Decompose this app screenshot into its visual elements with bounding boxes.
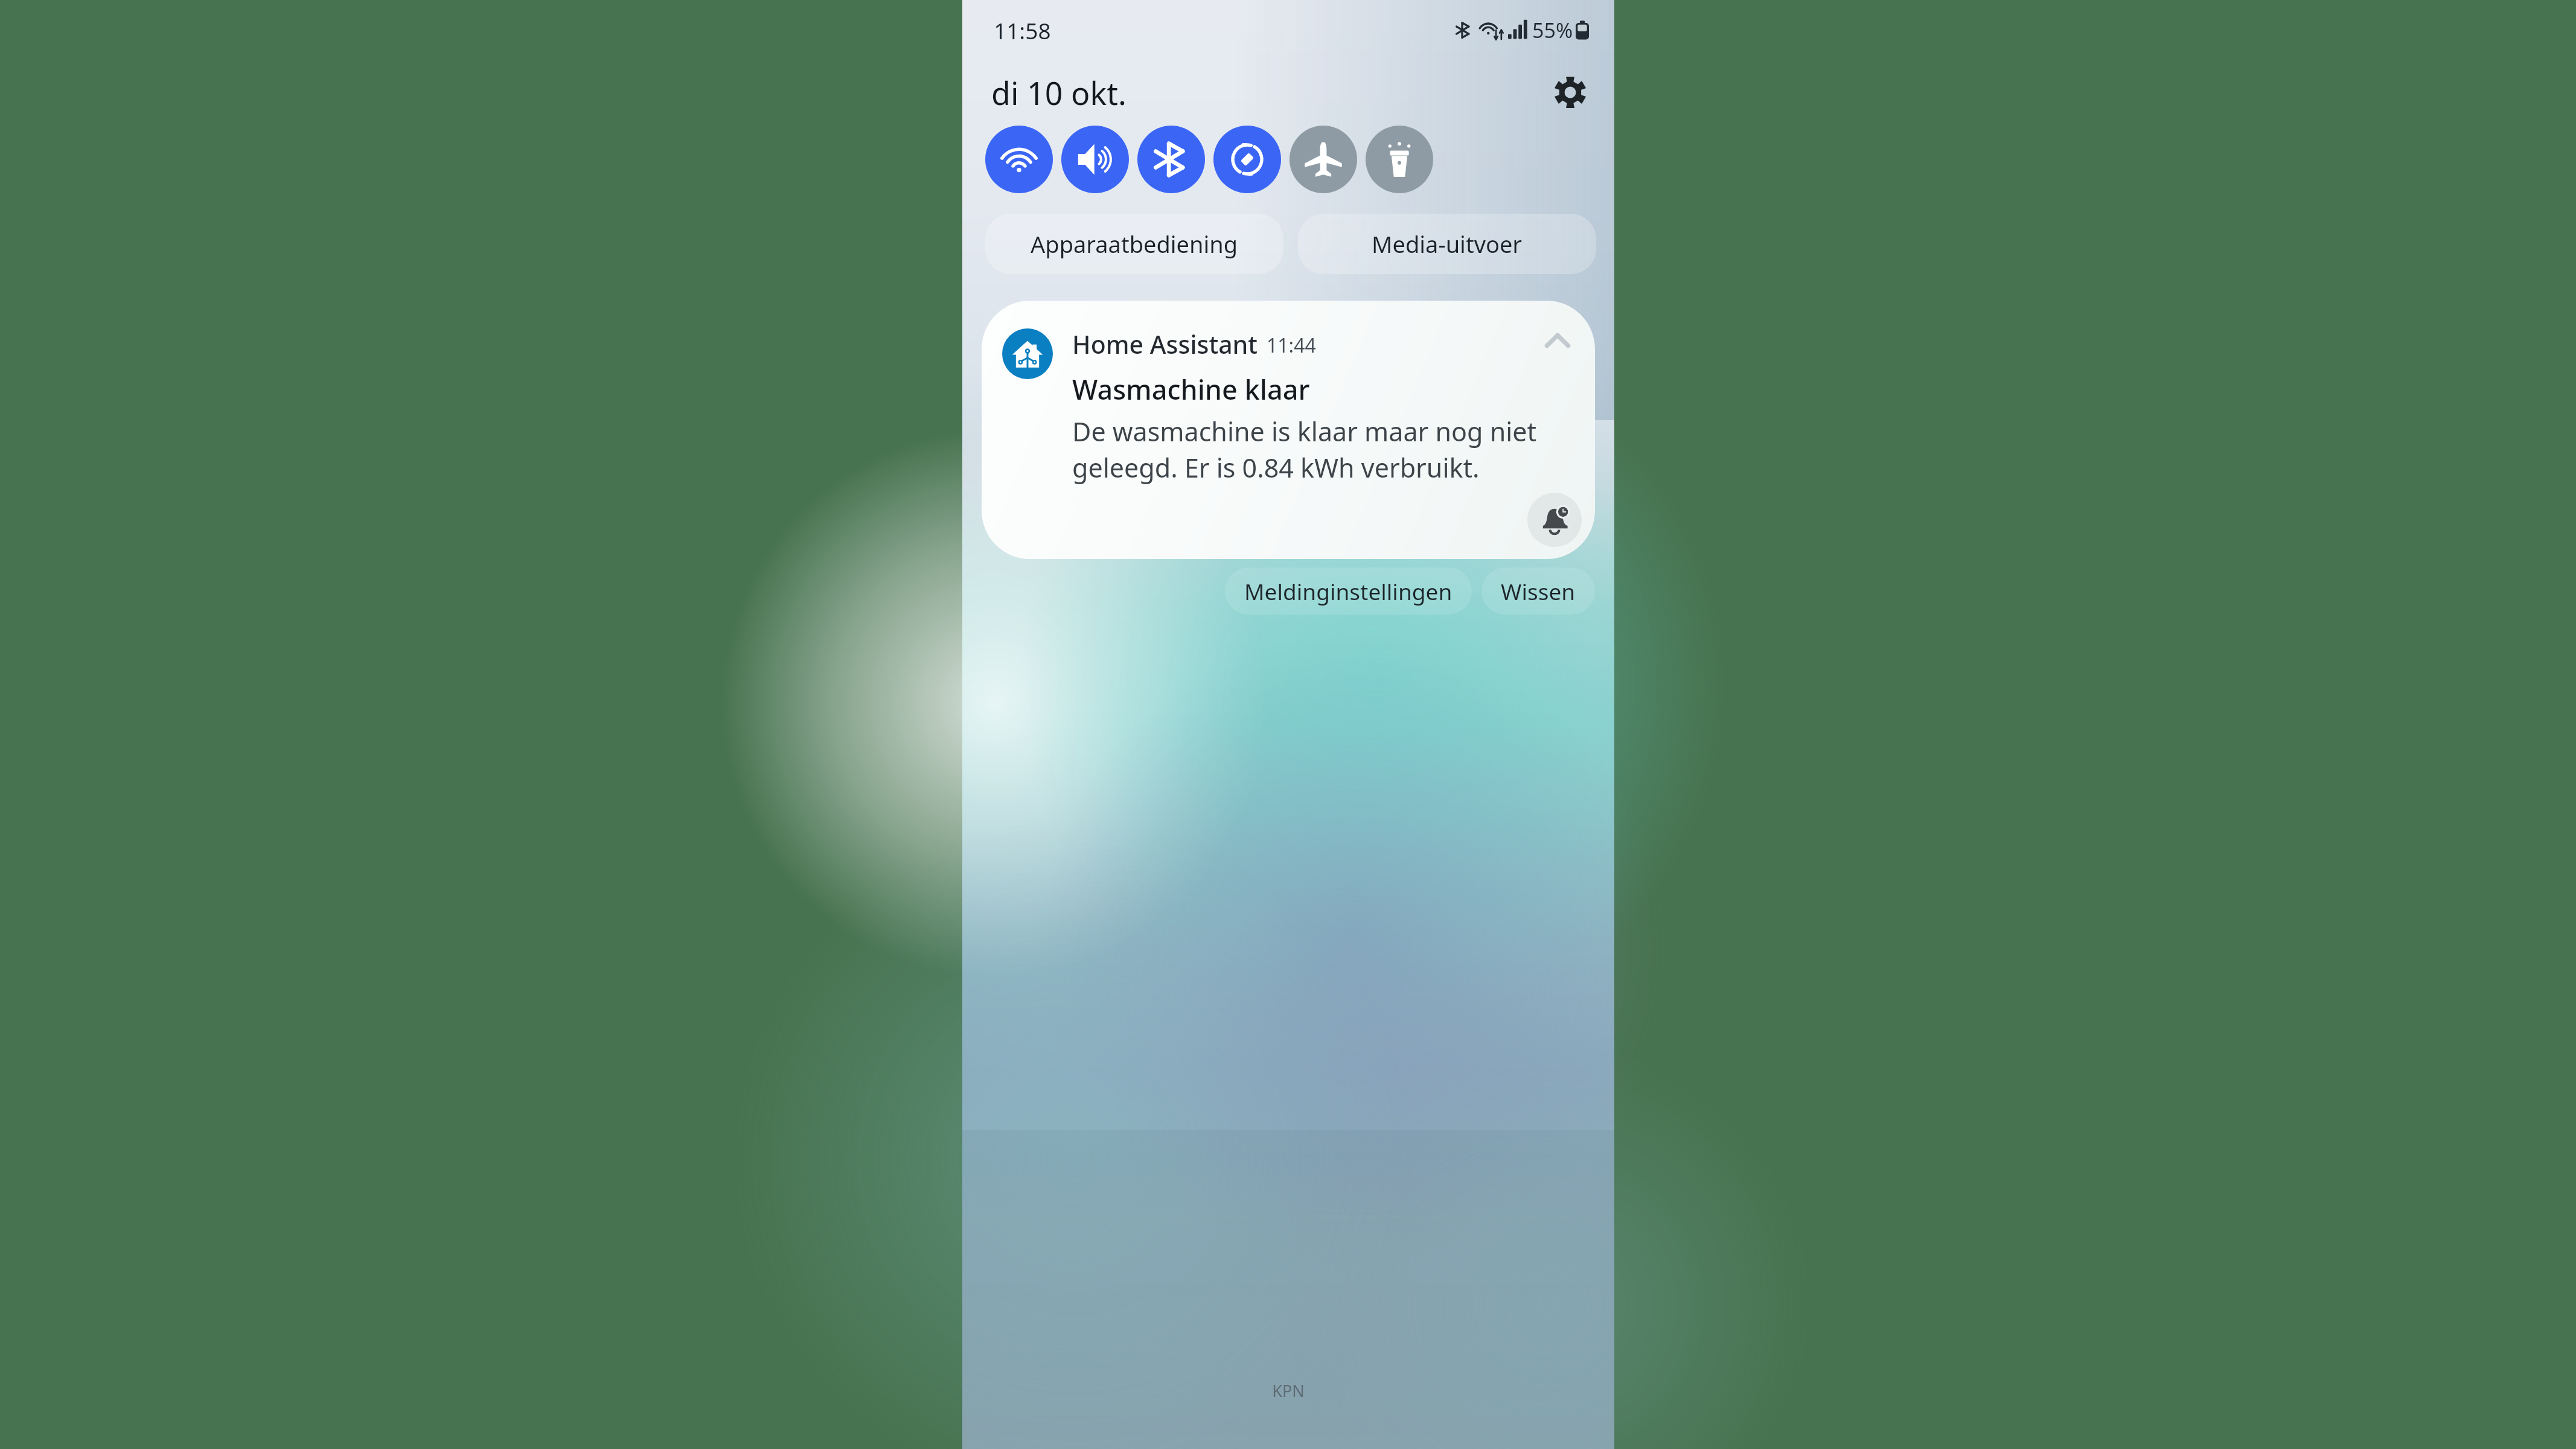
staticText: Meldinginstellingen — [1244, 576, 1453, 606]
staticText: KPN — [962, 1380, 1614, 1402]
staticText: 11:44 — [1267, 332, 1316, 359]
staticText: 11:58 — [994, 15, 1051, 45]
button[interactable]: Wi-Fi — [985, 126, 1053, 193]
staticText: Wissen — [1501, 576, 1576, 606]
staticText: di 10 okt. — [991, 71, 1127, 114]
button[interactable]: Bluetooth — [1137, 126, 1205, 193]
staticText: Apparaatbediening — [1031, 228, 1238, 260]
staticText: Media-uitvoer — [1372, 228, 1523, 260]
staticText: Wasmachine klaar — [1072, 371, 1310, 408]
button[interactable]: Wissen — [1481, 568, 1595, 615]
button[interactable]: Media-uitvoer — [1298, 214, 1596, 274]
button[interactable]: Collapse notification — [1535, 318, 1580, 363]
staticText: Home Assistant — [1072, 327, 1258, 361]
button[interactable]: Sound — [1061, 126, 1129, 193]
button[interactable]: Flashlight — [1366, 126, 1433, 193]
button[interactable]: Apparaatbediening — [985, 214, 1283, 274]
staticText: De wasmachine is klaar maar nog niet gel… — [1072, 414, 1537, 485]
staticText: 55% — [1532, 16, 1573, 44]
button[interactable]: Settings — [1543, 68, 1597, 117]
button[interactable]: Snooze notification — [1527, 493, 1582, 547]
button[interactable]: Home Assistant — [982, 301, 1595, 559]
button[interactable]: Airplane mode — [1290, 126, 1357, 193]
button[interactable]: Auto rotate — [1213, 126, 1281, 193]
button[interactable]: Meldinginstellingen — [1225, 568, 1472, 615]
